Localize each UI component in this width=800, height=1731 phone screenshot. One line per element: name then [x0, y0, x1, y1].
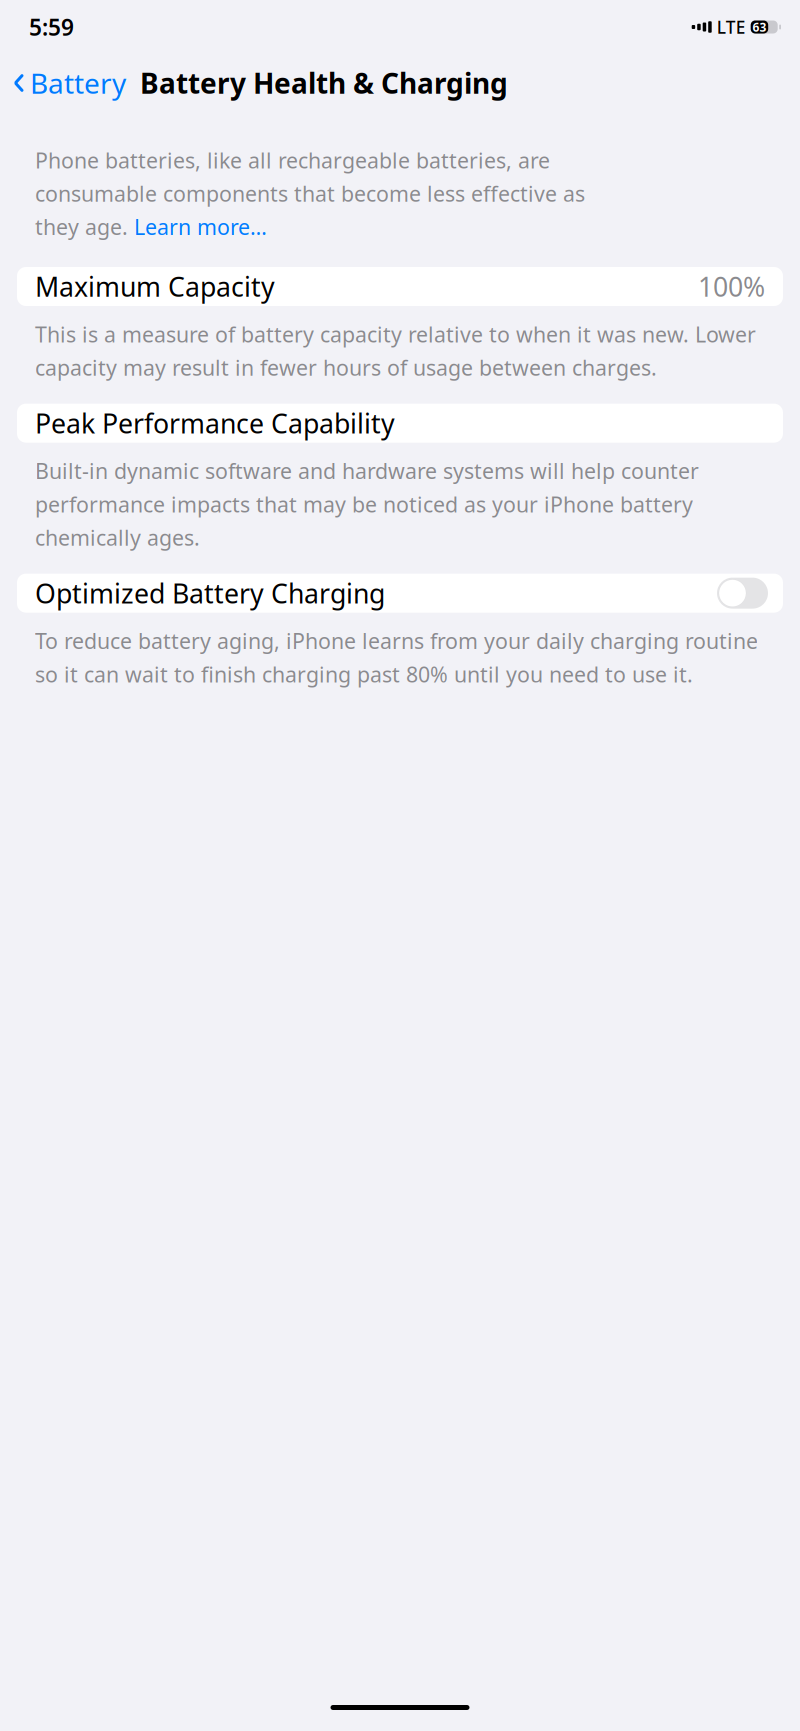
staticText: 100%	[698, 269, 765, 304]
staticText: Built-in dynamic software and hardware s…	[35, 457, 699, 552]
staticText: they age.	[35, 213, 134, 241]
button[interactable]: Learn more…	[134, 213, 267, 241]
button[interactable]: Optimized Battery Charging	[17, 574, 783, 613]
staticText: 5:59	[29, 12, 74, 42]
button[interactable]: Battery	[13, 58, 126, 108]
button[interactable]: Peak Performance Capability	[17, 404, 783, 443]
button[interactable]: Maximum Capacity	[17, 267, 783, 306]
staticText: To reduce battery aging, iPhone learns f…	[35, 627, 758, 688]
staticText: This is a measure of battery capacity re…	[35, 320, 756, 382]
staticText: LTE	[717, 15, 746, 38]
staticText: Battery Health & Charging	[140, 64, 508, 102]
staticText: Battery	[30, 64, 126, 102]
staticText: 63	[752, 19, 766, 35]
staticText: Phone batteries, like all rechargeable b…	[35, 146, 550, 174]
staticText: consumable components that become less e…	[35, 179, 585, 208]
staticText: Peak Performance Capability	[35, 405, 395, 441]
staticText: Optimized Battery Charging	[35, 575, 385, 611]
staticText: Maximum Capacity	[35, 269, 275, 304]
staticText: Learn more…	[134, 213, 267, 241]
